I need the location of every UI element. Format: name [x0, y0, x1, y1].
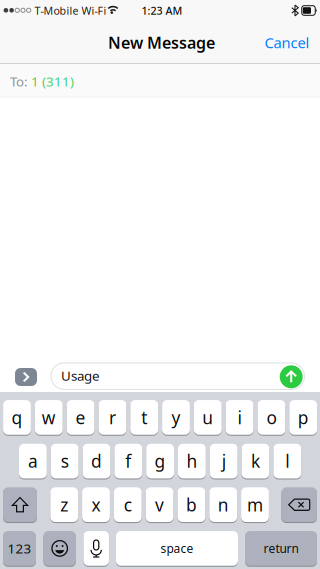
- button[interactable]: r: [98, 399, 126, 435]
- staticText: m: [247, 493, 263, 516]
- staticText: 123: [7, 539, 31, 557]
- staticText: z: [60, 493, 68, 516]
- button[interactable]: x: [82, 487, 110, 522]
- staticText: 1:23 AM: [141, 4, 182, 18]
- staticText: g: [155, 450, 166, 473]
- staticText: t: [141, 406, 147, 429]
- staticText: New Message: [108, 32, 215, 53]
- button[interactable]: o: [257, 399, 285, 435]
- button[interactable]: s: [51, 443, 79, 479]
- staticText: b: [186, 493, 197, 516]
- staticText: p: [298, 406, 309, 429]
- staticText: u: [202, 406, 213, 429]
- staticText: j: [222, 450, 226, 473]
- button[interactable]: [280, 365, 303, 388]
- staticText: r: [109, 406, 116, 429]
- button[interactable]: Cancel: [257, 27, 317, 57]
- button[interactable]: h: [178, 443, 206, 479]
- button[interactable]: k: [242, 443, 269, 479]
- staticText: y: [171, 406, 180, 429]
- staticText: f: [125, 450, 131, 473]
- button[interactable]: l: [273, 443, 301, 479]
- button[interactable]: y: [162, 399, 190, 435]
- staticText: a: [28, 450, 38, 473]
- button[interactable]: a: [19, 443, 47, 479]
- staticText: q: [11, 406, 22, 429]
- staticText: v: [155, 493, 164, 516]
- button[interactable]: w: [35, 399, 63, 435]
- button[interactable]: return: [245, 530, 317, 566]
- button[interactable]: space: [116, 530, 238, 566]
- button[interactable]: [83, 530, 109, 566]
- button[interactable]: 123: [3, 530, 36, 566]
- staticText: c: [124, 493, 132, 516]
- button[interactable]: f: [114, 443, 142, 479]
- button[interactable]: [281, 487, 317, 522]
- button[interactable]: t: [130, 399, 158, 435]
- button[interactable]: u: [194, 399, 222, 435]
- button[interactable]: i: [226, 399, 253, 435]
- button[interactable]: b: [177, 487, 205, 522]
- staticText: d: [91, 450, 102, 473]
- staticText: To:: [10, 72, 28, 90]
- staticText: s: [61, 450, 69, 473]
- button[interactable]: [43, 530, 76, 566]
- button[interactable]: q: [3, 399, 31, 435]
- staticText: x: [91, 493, 100, 516]
- button[interactable]: n: [209, 487, 237, 522]
- staticText: 1 (311): [31, 72, 74, 90]
- staticText: T-Mobile Wi-Fi: [34, 4, 106, 18]
- button[interactable]: z: [50, 487, 78, 522]
- button[interactable]: m: [241, 487, 269, 522]
- staticText: i: [238, 406, 242, 429]
- staticText: n: [218, 493, 229, 516]
- button[interactable]: e: [67, 399, 94, 435]
- button[interactable]: c: [114, 487, 142, 522]
- button[interactable]: v: [146, 487, 173, 522]
- staticText: Usage: [61, 367, 100, 384]
- staticText: e: [76, 406, 86, 429]
- staticText: k: [251, 450, 260, 473]
- staticText: h: [186, 450, 197, 473]
- button[interactable]: Usage: [51, 363, 304, 389]
- staticText: l: [285, 450, 289, 473]
- staticText: w: [42, 406, 56, 429]
- button[interactable]: g: [146, 443, 174, 479]
- staticText: Cancel: [264, 33, 309, 52]
- staticText: space: [160, 540, 193, 556]
- button[interactable]: [15, 368, 37, 386]
- button[interactable]: d: [83, 443, 110, 479]
- staticText: o: [266, 406, 276, 429]
- button[interactable]: j: [210, 443, 238, 479]
- staticText: return: [263, 540, 298, 556]
- button[interactable]: p: [289, 399, 317, 435]
- button[interactable]: [3, 487, 37, 522]
- button[interactable]: To:: [0, 64, 320, 97]
